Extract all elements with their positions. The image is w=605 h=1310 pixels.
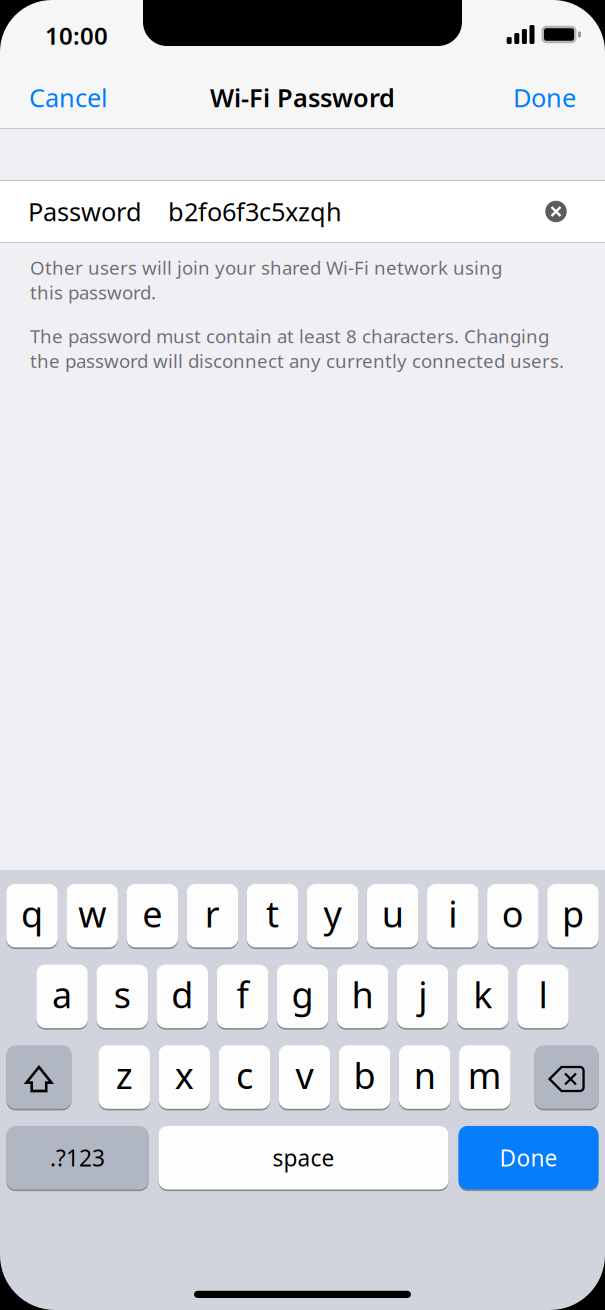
button[interactable]: z (98, 1044, 150, 1110)
button[interactable]: w (66, 883, 118, 948)
staticText: Done (513, 81, 576, 114)
staticText: v (295, 1051, 313, 1099)
staticText: Done (499, 1143, 557, 1173)
staticText: d (171, 970, 193, 1018)
button[interactable]: a (36, 964, 88, 1029)
button[interactable]: t (247, 883, 298, 948)
button[interactable]: s (96, 964, 148, 1029)
staticText: o (502, 890, 524, 937)
button[interactable]: Numbers and symbols (6, 1125, 148, 1190)
staticText: w (78, 890, 106, 937)
staticText: e (142, 890, 162, 937)
staticText: Other users will join your shared Wi-Fi … (30, 255, 502, 305)
button[interactable]: b (339, 1044, 390, 1110)
staticText: b2fo6f3c5xzqh (168, 195, 342, 228)
button[interactable]: x (158, 1044, 210, 1110)
staticText: r (205, 890, 220, 937)
staticText: j (418, 970, 427, 1018)
staticText: c (236, 1051, 253, 1099)
staticText: n (414, 1051, 436, 1099)
button[interactable]: e (126, 883, 178, 948)
staticText: m (468, 1051, 502, 1099)
button[interactable]: f (217, 964, 268, 1029)
button[interactable]: v (279, 1044, 330, 1110)
button[interactable]: o (487, 883, 539, 948)
button[interactable]: l (517, 964, 569, 1029)
staticText: t (266, 890, 279, 937)
staticText: u (382, 890, 404, 937)
staticText: b (354, 1051, 376, 1099)
staticText: z (116, 1051, 133, 1099)
staticText: q (21, 890, 43, 937)
staticText: f (236, 970, 248, 1018)
staticText: space (272, 1143, 334, 1173)
button[interactable]: n (399, 1044, 450, 1110)
staticText: Wi-Fi Password (210, 81, 395, 114)
button[interactable]: y (307, 883, 358, 948)
button[interactable]: Shift (6, 1044, 71, 1110)
button[interactable]: p (547, 883, 599, 948)
button[interactable]: u (367, 883, 418, 948)
staticText: h (352, 970, 374, 1018)
staticText: s (114, 970, 131, 1018)
button[interactable]: j (397, 964, 448, 1029)
button[interactable]: q (6, 883, 58, 948)
button[interactable]: d (157, 964, 208, 1029)
staticText: k (473, 970, 492, 1018)
staticText: x (175, 1051, 194, 1099)
button[interactable]: m (459, 1044, 511, 1110)
staticText: g (291, 970, 313, 1018)
button[interactable]: Done (513, 81, 576, 114)
staticText: .?123 (50, 1143, 105, 1173)
button[interactable]: Cancel (29, 81, 108, 114)
staticText: i (448, 890, 457, 937)
staticText: 10:00 (45, 20, 108, 51)
button[interactable]: Clear text (539, 194, 573, 228)
staticText: The password must contain at least 8 cha… (30, 324, 564, 373)
staticText: p (562, 890, 584, 937)
staticText: Password (28, 195, 142, 228)
staticText: y (324, 890, 342, 937)
button[interactable]: h (337, 964, 388, 1029)
button[interactable]: g (277, 964, 328, 1029)
button[interactable]: c (219, 1044, 270, 1110)
button[interactable]: i (427, 883, 478, 948)
button[interactable]: r (187, 883, 238, 948)
button[interactable]: Delete (534, 1044, 598, 1110)
button[interactable]: Done (458, 1125, 598, 1190)
button[interactable]: k (457, 964, 509, 1029)
staticText: Cancel (29, 81, 108, 114)
staticText: l (538, 970, 547, 1018)
staticText: a (52, 970, 72, 1018)
button[interactable]: space (158, 1125, 448, 1190)
